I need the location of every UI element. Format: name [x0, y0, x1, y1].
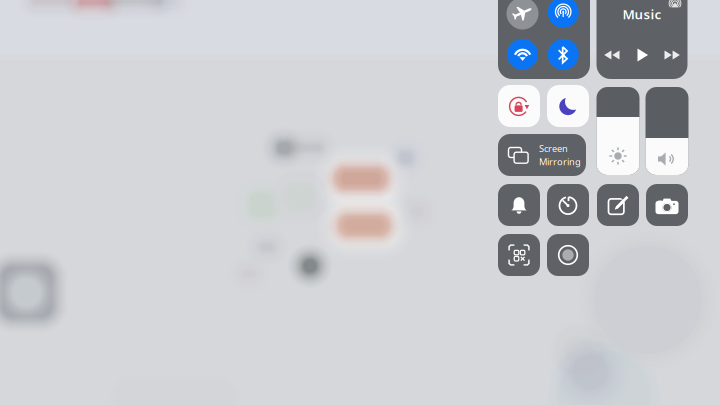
staticText: Screen — [539, 142, 568, 154]
button[interactable]: Bluetooth — [548, 39, 579, 70]
button[interactable]: Wi-Fi — [507, 39, 538, 70]
button[interactable]: Code Scanner — [498, 234, 540, 276]
button[interactable]: Notes — [597, 184, 639, 226]
button[interactable]: AirDrop — [548, 0, 579, 28]
button[interactable]: Do Not Disturb — [547, 85, 589, 127]
button[interactable]: Camera — [646, 184, 688, 226]
button[interactable]: Rotation Lock — [498, 85, 540, 127]
button[interactable]: Timer — [547, 184, 589, 226]
button[interactable]: Airplane Mode — [506, 0, 538, 29]
button[interactable]: Play — [633, 46, 651, 64]
button[interactable]: Next Track — [662, 47, 682, 63]
button[interactable]: Volume — [645, 87, 688, 175]
button[interactable]: Screen — [498, 134, 586, 176]
button[interactable]: Previous Track — [602, 47, 622, 63]
button[interactable]: Brightness — [596, 87, 639, 175]
staticText: Mirroring — [539, 155, 581, 168]
staticText: Music — [622, 5, 661, 23]
button[interactable]: AirPlay — [668, 0, 682, 10]
button[interactable]: Alarm — [498, 184, 540, 226]
button[interactable]: Screen Recording — [547, 234, 589, 276]
